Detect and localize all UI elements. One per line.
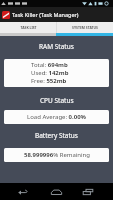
staticText: TASK LIST (20, 25, 37, 30)
button[interactable]: Load Average: 0.00% (4, 110, 109, 124)
staticText: Total: 694mb (31, 61, 68, 69)
staticText: SYSTEM STATUS (72, 25, 98, 30)
button[interactable]: SYSTEM STATUS (57, 22, 113, 33)
staticText: Task Killer (Task Manager) (12, 11, 79, 18)
staticText: RAM Status (39, 42, 74, 51)
button[interactable]: Recent apps (82, 187, 94, 197)
staticText: Battery Status (35, 131, 78, 140)
staticText: 58.999996% Remaining (24, 151, 90, 159)
button[interactable]: Back (17, 187, 29, 197)
button[interactable]: TASK LIST (0, 22, 56, 33)
staticText: Free: 552mb (31, 77, 67, 85)
staticText: Used: 142mb (31, 69, 69, 77)
button[interactable]: Total: 694mb (4, 59, 109, 87)
button[interactable]: 58.999996% Remaining (4, 148, 109, 162)
staticText: Load Average: 0.00% (27, 113, 87, 121)
button[interactable]: Home (50, 187, 63, 197)
staticText: CPU Status (40, 96, 74, 105)
